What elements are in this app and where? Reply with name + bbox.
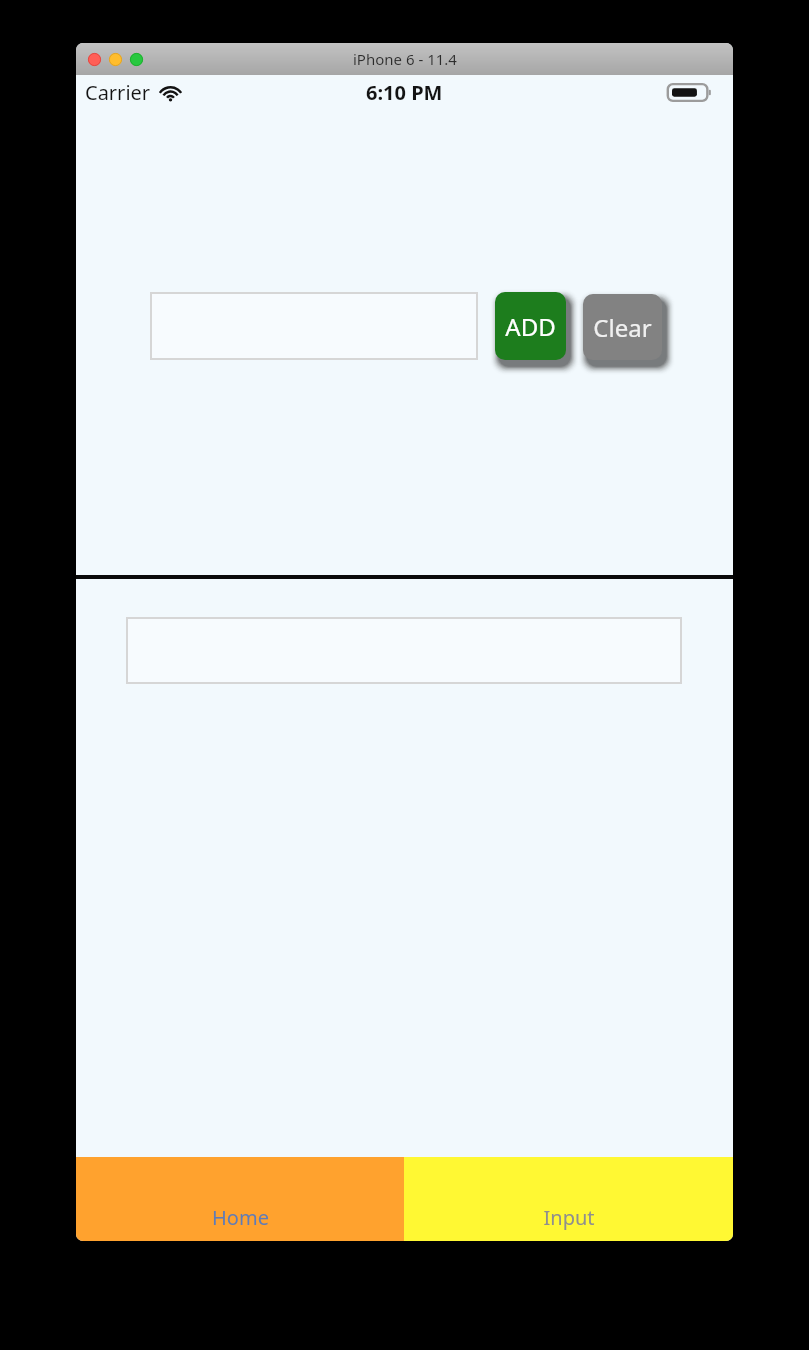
button[interactable]: Input (404, 1157, 733, 1241)
staticText: ADD (505, 310, 556, 343)
button[interactable]: ADD (495, 292, 566, 360)
button[interactable]: Zoom window (130, 53, 143, 66)
staticText: Home (212, 1204, 269, 1231)
staticText: iPhone 6 - 11.4 (353, 49, 457, 69)
button[interactable]: Clear (583, 294, 662, 360)
button[interactable]: Close window (88, 53, 101, 66)
staticText: Input (543, 1204, 595, 1231)
button[interactable]: Minimize window (109, 53, 122, 66)
staticText: Carrier (85, 79, 151, 106)
button[interactable] (150, 292, 478, 360)
button[interactable]: Home (76, 1157, 404, 1241)
staticText: 6:10 PM (366, 79, 443, 106)
button[interactable] (126, 617, 682, 684)
staticText: Clear (593, 311, 652, 344)
